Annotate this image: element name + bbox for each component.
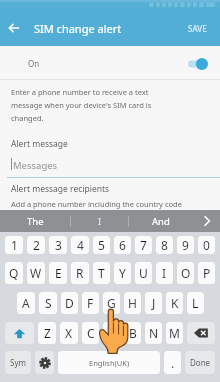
staticText: Done bbox=[190, 357, 211, 368]
button[interactable]: 5 bbox=[93, 236, 110, 254]
staticText: English(UK) bbox=[89, 358, 130, 368]
button[interactable]: . bbox=[164, 351, 181, 374]
staticText: Alert message recipients bbox=[11, 183, 110, 195]
button[interactable]: 1 bbox=[5, 236, 23, 254]
staticText: 2 bbox=[33, 237, 40, 253]
button[interactable]: On bbox=[0, 46, 220, 79]
staticText: 1 bbox=[11, 237, 18, 253]
staticText: B bbox=[129, 325, 137, 341]
button[interactable]: SAVE bbox=[175, 14, 220, 43]
button[interactable]: The bbox=[0, 210, 70, 232]
button[interactable]: More suggestions bbox=[193, 210, 220, 232]
staticText: 8 bbox=[161, 237, 168, 253]
staticText: Enter a phone number to receive a text m… bbox=[11, 87, 152, 123]
button[interactable]: B bbox=[124, 322, 141, 344]
staticText: J bbox=[152, 295, 156, 311]
staticText: 4 bbox=[77, 237, 84, 253]
staticText: E bbox=[55, 265, 62, 281]
staticText: X bbox=[65, 325, 73, 341]
staticText: F bbox=[87, 295, 94, 311]
staticText: Add a phone number including the country… bbox=[11, 199, 182, 209]
button[interactable]: C bbox=[82, 322, 99, 344]
button[interactable]: 6 bbox=[114, 236, 131, 254]
button[interactable]: N bbox=[145, 322, 162, 344]
staticText: I bbox=[162, 265, 167, 281]
button[interactable]: 9 bbox=[177, 236, 194, 254]
button[interactable]: I bbox=[156, 262, 173, 284]
staticText: Messages bbox=[13, 159, 58, 172]
staticText: O bbox=[181, 265, 191, 281]
button[interactable]: 8 bbox=[156, 236, 173, 254]
staticText: 5 bbox=[98, 237, 105, 253]
button[interactable]: I bbox=[71, 210, 128, 232]
button[interactable]: Shift bbox=[5, 322, 34, 344]
staticText: SIM change alert bbox=[34, 21, 122, 36]
staticText: R bbox=[76, 265, 84, 281]
button[interactable]: K bbox=[166, 292, 183, 314]
button[interactable]: Z bbox=[38, 322, 56, 344]
staticText: N bbox=[149, 325, 159, 341]
button[interactable]: A bbox=[17, 292, 35, 314]
button[interactable]: English(UK) bbox=[58, 351, 160, 374]
button[interactable]: Done bbox=[185, 351, 215, 374]
staticText: P bbox=[203, 265, 211, 281]
staticText: And bbox=[152, 215, 170, 228]
button[interactable]: D bbox=[61, 292, 78, 314]
staticText: G bbox=[107, 295, 116, 311]
staticText: V bbox=[108, 325, 116, 341]
button[interactable]: W bbox=[27, 262, 45, 284]
button[interactable]: H bbox=[124, 292, 141, 314]
button[interactable]: F bbox=[82, 292, 99, 314]
staticText: D bbox=[65, 295, 74, 311]
staticText: . bbox=[171, 355, 175, 371]
staticText: K bbox=[171, 295, 179, 311]
button[interactable]: R bbox=[71, 262, 89, 284]
button[interactable]: 2 bbox=[27, 236, 45, 254]
button[interactable]: Navigate up bbox=[1, 15, 27, 41]
button[interactable]: S bbox=[39, 292, 57, 314]
button[interactable]: 0 bbox=[198, 236, 215, 254]
button[interactable]: P bbox=[198, 262, 215, 284]
staticText: W bbox=[30, 265, 42, 281]
button[interactable]: Keyboard settings bbox=[35, 351, 54, 374]
staticText: I bbox=[98, 215, 102, 228]
button[interactable]: J bbox=[145, 292, 162, 314]
staticText: 9 bbox=[182, 237, 189, 253]
button[interactable]: 4 bbox=[71, 236, 89, 254]
button[interactable]: 3 bbox=[49, 236, 67, 254]
staticText: Y bbox=[119, 265, 126, 281]
staticText: 6 bbox=[119, 237, 126, 253]
button[interactable]: Y bbox=[114, 262, 131, 284]
button[interactable]: T bbox=[93, 262, 110, 284]
button[interactable]: E bbox=[49, 262, 67, 284]
staticText: Z bbox=[44, 325, 51, 341]
staticText: 3 bbox=[55, 237, 62, 253]
staticText: On bbox=[28, 58, 40, 69]
button[interactable]: Q bbox=[5, 262, 23, 284]
button[interactable]: L bbox=[187, 292, 204, 314]
staticText: SAVE bbox=[188, 23, 207, 34]
button[interactable]: U bbox=[135, 262, 152, 284]
staticText: 0 bbox=[203, 237, 210, 253]
button[interactable]: V bbox=[103, 322, 120, 344]
staticText: T bbox=[98, 265, 105, 281]
button[interactable]: And bbox=[129, 210, 193, 232]
staticText: Sym bbox=[10, 357, 26, 368]
button[interactable]: G bbox=[103, 292, 120, 314]
staticText: U bbox=[139, 265, 148, 281]
staticText: Q bbox=[9, 265, 19, 281]
staticText: S bbox=[45, 295, 52, 311]
staticText: M bbox=[169, 325, 180, 341]
staticText: 7 bbox=[140, 237, 147, 253]
button[interactable]: M bbox=[166, 322, 183, 344]
staticText: C bbox=[87, 325, 95, 341]
staticText: The bbox=[27, 215, 44, 228]
button[interactable]: O bbox=[177, 262, 194, 284]
staticText: A bbox=[22, 295, 30, 311]
button[interactable]: 7 bbox=[135, 236, 152, 254]
staticText: L bbox=[192, 295, 199, 311]
button[interactable]: X bbox=[60, 322, 78, 344]
button[interactable]: Sym bbox=[5, 351, 31, 374]
staticText: Alert message bbox=[11, 138, 68, 150]
button[interactable]: Backspace bbox=[187, 322, 215, 344]
